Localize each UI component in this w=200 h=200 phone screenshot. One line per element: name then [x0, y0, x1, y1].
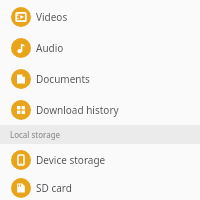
button[interactable]: Audio — [0, 32, 200, 63]
button[interactable]: Device storage — [0, 144, 200, 175]
staticText: Audio — [36, 41, 64, 55]
staticText: Videos — [36, 10, 68, 24]
button[interactable]: Videos — [0, 1, 200, 32]
staticText: Device storage — [36, 153, 106, 167]
button[interactable]: SD card — [0, 175, 200, 200]
button[interactable]: Documents — [0, 63, 200, 94]
staticText: Download history — [36, 103, 119, 117]
staticText: Local storage — [10, 129, 61, 140]
staticText: SD card — [36, 181, 72, 195]
staticText: Documents — [36, 72, 90, 86]
button[interactable]: Download history — [0, 94, 200, 125]
